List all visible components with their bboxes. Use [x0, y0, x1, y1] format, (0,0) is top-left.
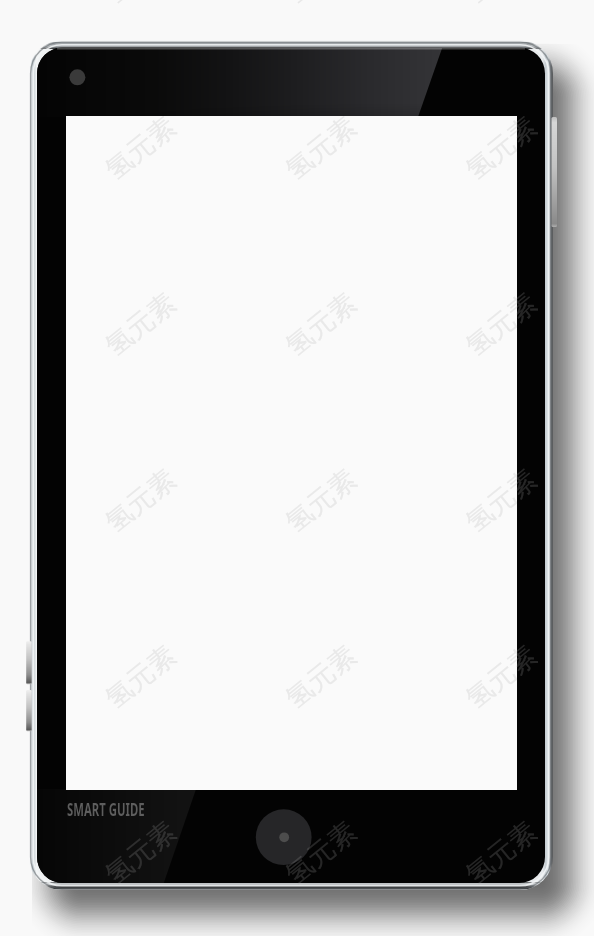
button[interactable]: Tablet device mockup [0, 0, 594, 936]
